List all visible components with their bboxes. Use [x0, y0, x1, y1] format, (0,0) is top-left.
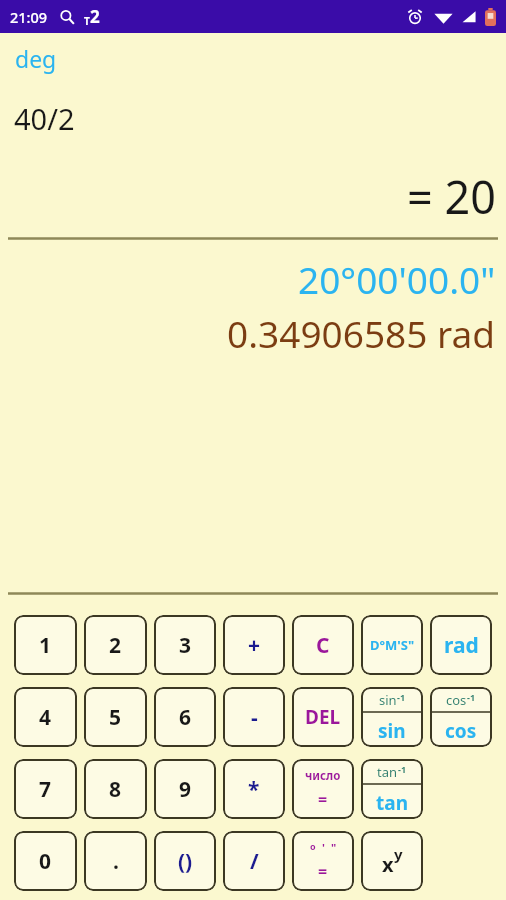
staticText: =	[318, 860, 328, 882]
staticText: 7	[39, 775, 52, 804]
staticText: =	[318, 788, 328, 810]
button[interactable]: C	[292, 615, 354, 675]
button[interactable]: cos inverse, cos	[430, 687, 492, 747]
staticText: 40/2	[14, 99, 75, 138]
staticText: o	[310, 840, 316, 852]
button[interactable]: 7	[14, 759, 77, 819]
button[interactable]: +	[223, 615, 285, 675]
staticText: "	[331, 840, 337, 855]
button[interactable]: ()	[154, 831, 216, 891]
button[interactable]: .	[84, 831, 147, 891]
staticText: -1	[397, 691, 406, 703]
staticText: y	[394, 844, 403, 864]
staticText: 0.34906585 rad	[227, 308, 496, 358]
staticText: 6	[179, 703, 192, 732]
staticText: 4	[39, 703, 52, 732]
staticText: 1	[39, 631, 52, 660]
button[interactable]: 4	[14, 687, 77, 747]
staticText: .	[113, 847, 119, 876]
button[interactable]: *	[223, 759, 285, 819]
staticText: sin	[378, 718, 406, 744]
staticText: -1	[467, 691, 476, 703]
button[interactable]: degrees minutes seconds equals	[292, 831, 354, 891]
button[interactable]: число =	[292, 759, 354, 819]
staticText: +	[248, 631, 261, 660]
staticText: C	[316, 631, 330, 660]
staticText: x	[382, 851, 394, 878]
staticText: 3	[179, 631, 192, 660]
staticText: -	[251, 703, 258, 732]
staticText: D°M'S"	[370, 636, 415, 654]
staticText: 21:09	[10, 7, 48, 27]
staticText: 2	[109, 631, 122, 660]
staticText: 8	[109, 775, 122, 804]
staticText: -1	[398, 763, 407, 775]
button[interactable]: -	[223, 687, 285, 747]
button[interactable]: 9	[154, 759, 216, 819]
staticText: ()	[178, 847, 193, 876]
button[interactable]: rad	[430, 615, 492, 675]
staticText: sin	[379, 691, 397, 709]
button[interactable]: 1	[14, 615, 77, 675]
button[interactable]: D°M'S"	[361, 615, 423, 675]
staticText: 20°00'00.0"	[298, 254, 496, 304]
button[interactable]: x to the power of y	[361, 831, 423, 891]
staticText: 5	[109, 703, 122, 732]
staticText: T	[84, 14, 90, 28]
button[interactable]: 5	[84, 687, 147, 747]
staticText: *	[248, 775, 260, 804]
button[interactable]: sin inverse, sin	[361, 687, 423, 747]
button[interactable]: DEL	[292, 687, 354, 747]
staticText: deg	[15, 43, 57, 74]
staticText: 9	[179, 775, 192, 804]
staticText: /	[250, 847, 259, 876]
staticText: rad	[444, 631, 479, 660]
button[interactable]: 6	[154, 687, 216, 747]
button[interactable]: 3	[154, 615, 216, 675]
staticText: DEL	[305, 704, 341, 730]
staticText: '	[322, 840, 325, 855]
button[interactable]: /	[223, 831, 285, 891]
staticText: cos	[445, 718, 477, 744]
staticText: tan	[377, 763, 398, 781]
button[interactable]: tan inverse, tan	[361, 759, 423, 819]
staticText: число	[305, 768, 341, 784]
button[interactable]: 8	[84, 759, 147, 819]
button[interactable]: 2	[84, 615, 147, 675]
button[interactable]: 0	[14, 831, 77, 891]
staticText: 2	[90, 5, 100, 28]
staticText: tan	[376, 790, 408, 816]
staticText: cos	[446, 691, 467, 709]
staticText: 0	[39, 847, 52, 876]
staticText: = 20	[407, 166, 496, 227]
